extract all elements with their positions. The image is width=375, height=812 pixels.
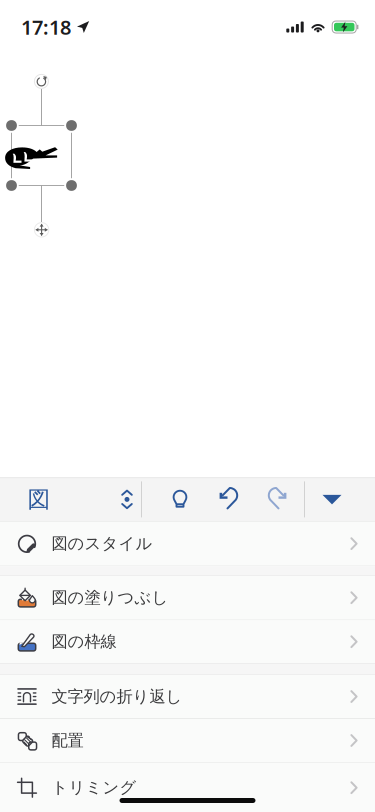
button[interactable]: 図の塗りつぶし: [0, 576, 375, 620]
button[interactable]: Hide ribbon: [310, 477, 354, 521]
staticText: 17:18: [21, 14, 71, 40]
staticText: 図の塗りつぶし: [51, 587, 168, 608]
button[interactable]: 配置: [0, 719, 375, 762]
button[interactable]: Undo: [207, 477, 251, 521]
button[interactable]: Shape tab: [11, 477, 67, 521]
button[interactable]: Redo: [255, 477, 299, 521]
button[interactable]: 文字列の折り返し: [0, 675, 375, 718]
button[interactable]: 図の枠線: [0, 620, 375, 663]
staticText: 配置: [51, 730, 83, 751]
staticText: 文字列の折り返し: [51, 686, 182, 707]
button[interactable]: トリミング: [0, 763, 375, 812]
button[interactable]: Expand ribbon: [105, 477, 149, 521]
staticText: 図のスタイル: [51, 533, 152, 554]
staticText: 図: [27, 485, 50, 513]
staticText: 図の枠線: [51, 631, 116, 652]
staticText: トリミング: [51, 777, 136, 798]
button[interactable]: Tell me what you want to do: [158, 477, 202, 521]
button[interactable]: 図のスタイル: [0, 522, 375, 566]
